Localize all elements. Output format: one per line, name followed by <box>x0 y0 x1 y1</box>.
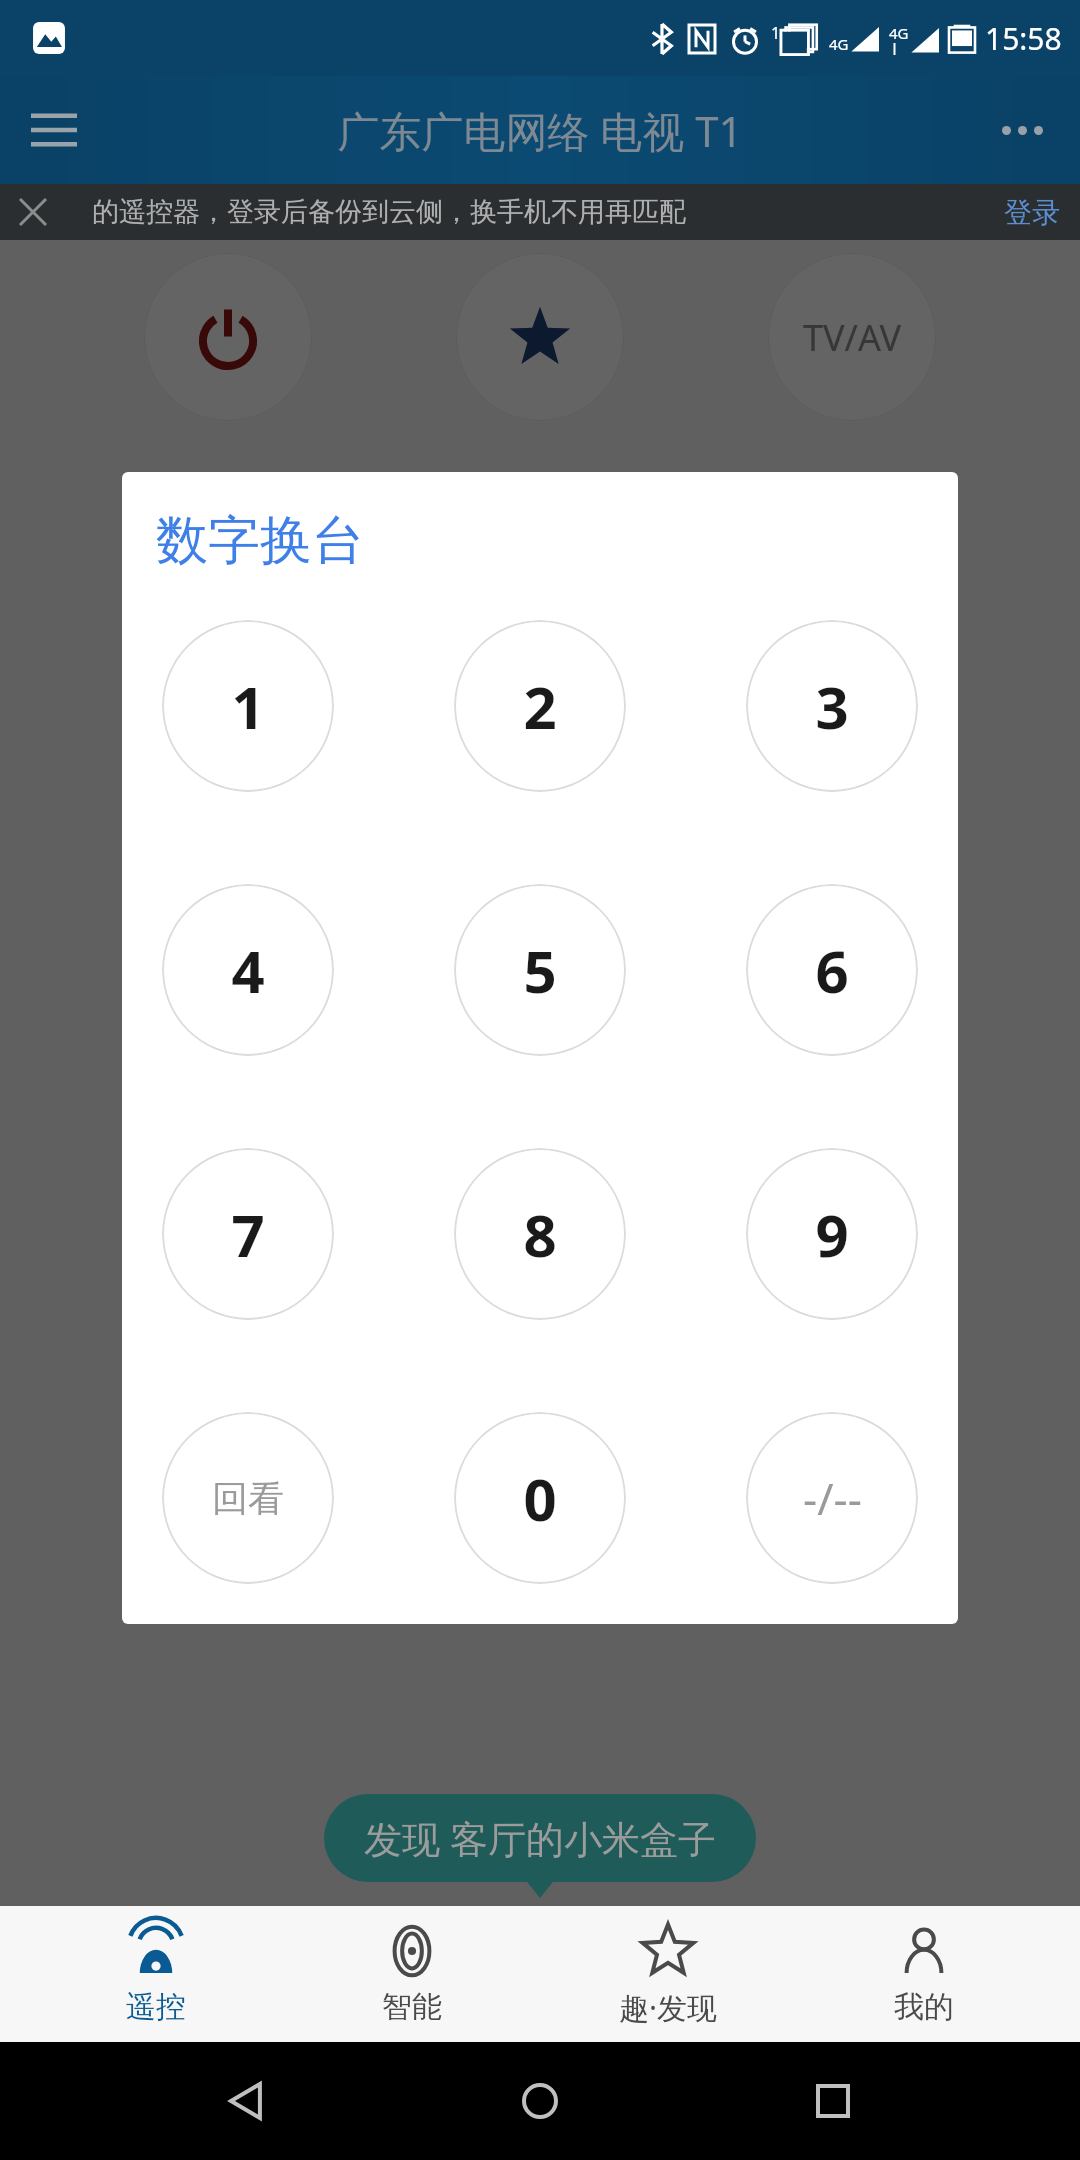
button[interactable]: 0 <box>454 1412 626 1584</box>
staticText: 智能 <box>382 1988 442 2026</box>
staticText: 15:58 <box>985 18 1062 59</box>
button[interactable]: 8 <box>454 1148 626 1320</box>
staticText: -/-- <box>803 1468 862 1528</box>
staticText: 1 <box>231 667 265 746</box>
button[interactable]: 遥控 <box>56 1906 256 2042</box>
button[interactable]: 趣·发现 <box>568 1906 768 2042</box>
button[interactable]: TV/AV <box>768 253 936 421</box>
button[interactable]: 发现 客厅的小米盒子 <box>324 1794 756 1882</box>
staticText: 2 <box>523 667 557 746</box>
staticText: 5 <box>523 931 557 1010</box>
button[interactable]: 我的 <box>824 1906 1024 2042</box>
button[interactable]: 智能 <box>312 1906 512 2042</box>
staticText: 4 <box>231 931 265 1010</box>
staticText: 9 <box>815 1195 849 1274</box>
button[interactable]: Remote key <box>456 253 624 421</box>
staticText: 广东广电网络 电视 T1 <box>337 102 743 159</box>
button[interactable]: More options <box>986 94 1058 166</box>
staticText: 的遥控器，登录后备份到云侧，换手机不用再匹配 <box>92 195 686 229</box>
button[interactable]: Remote key <box>768 1456 936 1624</box>
staticText: 8 <box>523 1195 557 1274</box>
staticText: 遥控 <box>126 1988 186 2026</box>
button[interactable]: 7 <box>162 1148 334 1320</box>
staticText: 我的 <box>894 1988 954 2026</box>
staticText: 0 <box>523 1459 557 1538</box>
button[interactable]: Remote key <box>456 1456 624 1624</box>
staticText: 4G <box>829 34 849 54</box>
button[interactable]: 3 <box>746 620 918 792</box>
staticText: 登录 <box>1004 195 1060 230</box>
staticText: TV/AV <box>803 313 902 362</box>
button[interactable]: Menu <box>18 94 90 166</box>
button[interactable]: 登录 <box>984 189 1080 236</box>
button[interactable]: 9 <box>746 1148 918 1320</box>
button[interactable]: Recents <box>788 2056 878 2146</box>
button[interactable]: Home <box>495 2056 585 2146</box>
staticText: 1 <box>771 22 781 44</box>
staticText: 趣·发现 <box>619 1987 718 2028</box>
button[interactable]: Remote key <box>144 253 312 421</box>
button[interactable]: -/-- <box>746 1412 918 1584</box>
button[interactable]: Close <box>6 185 60 239</box>
staticText: 数字换台 <box>156 508 364 574</box>
button[interactable]: 2 <box>454 620 626 792</box>
button[interactable]: Remote key <box>768 1156 936 1324</box>
staticText: 3 <box>815 667 849 746</box>
button[interactable]: 5 <box>454 884 626 1056</box>
staticText: 7 <box>231 1195 265 1274</box>
button[interactable]: Remote key <box>456 1156 624 1324</box>
staticText: 4G <box>889 23 909 43</box>
staticText: 回看 <box>212 1476 284 1521</box>
button[interactable]: Remote key <box>144 1456 312 1624</box>
button[interactable]: 4 <box>162 884 334 1056</box>
button[interactable]: Remote key <box>144 1156 312 1324</box>
staticText: 发现 客厅的小米盒子 <box>364 1812 716 1864</box>
button[interactable]: 6 <box>746 884 918 1056</box>
button[interactable]: 1 <box>162 620 334 792</box>
staticText: 6 <box>815 931 849 1010</box>
button[interactable]: Back <box>203 2056 293 2146</box>
button[interactable]: 回看 <box>162 1412 334 1584</box>
